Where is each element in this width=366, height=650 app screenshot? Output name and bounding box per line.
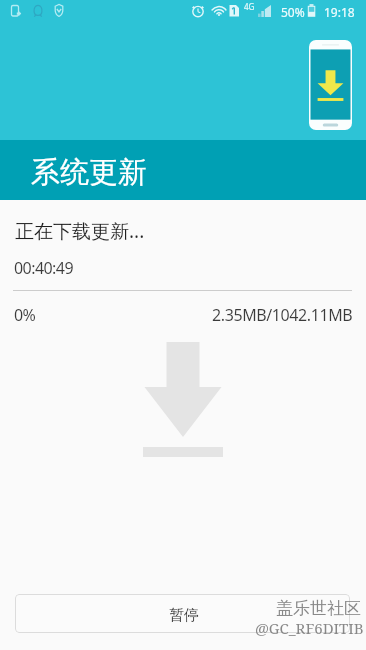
staticText: 系统更新 — [31, 154, 147, 191]
staticText: 50% — [281, 4, 305, 20]
staticText: 2.35MB/1042.11MB — [212, 304, 353, 326]
staticText: 4G — [244, 1, 255, 12]
button[interactable]: 暂停 — [15, 594, 350, 633]
staticText: @GC_RF6DITIB — [255, 618, 364, 638]
staticText: 19:18 — [324, 4, 355, 20]
staticText: 0% — [14, 304, 36, 326]
staticText: 暂停 — [169, 606, 199, 625]
staticText: 盖乐世社区 — [276, 598, 361, 619]
staticText: 正在下载更新... — [15, 218, 145, 244]
staticText: 00:40:49 — [14, 257, 74, 279]
